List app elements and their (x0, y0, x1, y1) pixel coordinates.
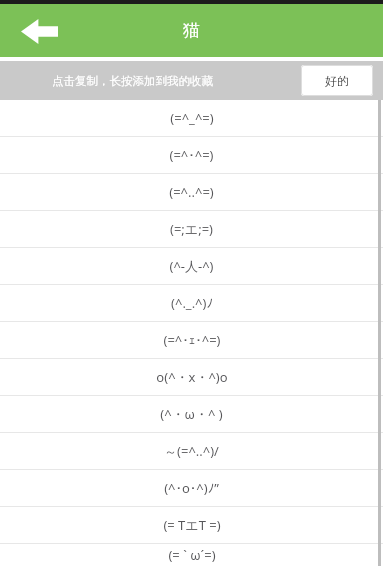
staticText: (=;エ;=) (170, 220, 213, 238)
button[interactable]: 好的 (301, 65, 373, 96)
staticText: (=^･ｪ･^=) (163, 331, 221, 349)
button[interactable]: (=^･ｪ･^=) (0, 322, 383, 358)
button[interactable]: (^・ω・^ ) (0, 396, 383, 432)
button[interactable]: (=^･^=) (0, 137, 383, 173)
staticText: o(^・x・^)o (156, 368, 228, 386)
staticText: (=^_^=) (170, 109, 214, 127)
button[interactable]: (=^_^=) (0, 100, 383, 136)
button[interactable]: (= TエT =) (0, 507, 383, 543)
button[interactable]: (= ` ω´=) (0, 544, 383, 566)
staticText: (=^･^=) (169, 146, 214, 164)
button[interactable]: (^-人-^) (0, 248, 383, 284)
staticText: (= TエT =) (163, 516, 221, 534)
staticText: 点击复制，长按添加到我的收藏 (52, 74, 213, 88)
button[interactable]: (^._.^)ﾉ (0, 285, 383, 321)
staticText: 好的 (325, 73, 349, 88)
button[interactable]: Back (12, 9, 66, 53)
button[interactable]: o(^・x・^)o (0, 359, 383, 395)
staticText: (^･o･^)ﾉ” (164, 479, 219, 497)
staticText: (= ` ω´=) (168, 546, 216, 564)
button[interactable]: ～(=^‥^)/ (0, 433, 383, 469)
staticText: (=^..^=) (169, 183, 214, 201)
staticText: (^._.^)ﾉ (171, 294, 213, 312)
button[interactable]: (=^..^=) (0, 174, 383, 210)
staticText: 猫 (183, 20, 200, 41)
button[interactable]: (=;エ;=) (0, 211, 383, 247)
button[interactable]: (^･o･^)ﾉ” (0, 470, 383, 506)
staticText: ～(=^‥^)/ (164, 442, 219, 460)
staticText: (^-人-^) (169, 257, 214, 275)
staticText: (^・ω・^ ) (160, 405, 223, 423)
